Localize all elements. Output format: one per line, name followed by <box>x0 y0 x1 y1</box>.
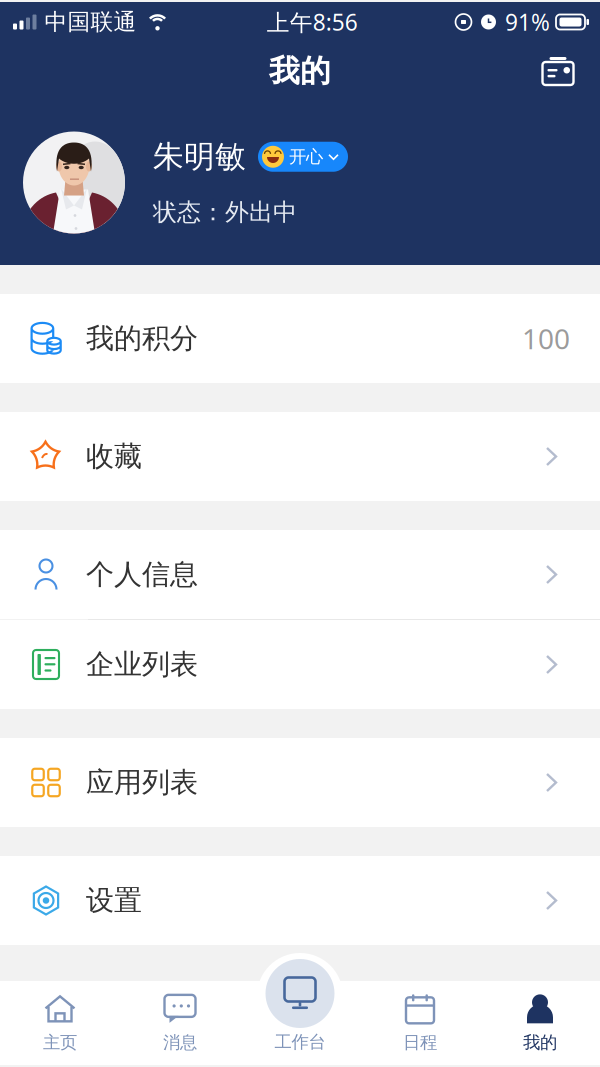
staticText: 朱明敏 <box>153 138 246 176</box>
button[interactable]: 应用列表 <box>0 738 600 827</box>
staticText: 我的 <box>269 52 331 90</box>
button[interactable]: 消息 <box>120 981 240 1065</box>
staticText: 上午8:56 <box>267 7 358 37</box>
staticText: 100 <box>522 320 570 357</box>
button[interactable]: 名片 <box>530 46 600 96</box>
staticText: 消息 <box>163 1032 197 1053</box>
staticText: 设置 <box>86 883 142 918</box>
staticText: 主页 <box>43 1032 77 1053</box>
staticText: 我的 <box>523 1032 557 1053</box>
staticText: 我的积分 <box>86 321 198 356</box>
button[interactable]: 企业列表 <box>0 620 600 709</box>
button[interactable]: 日程 <box>360 981 480 1065</box>
button[interactable]: 主页 <box>0 981 120 1065</box>
button[interactable]: 个人信息 <box>0 530 600 619</box>
button[interactable]: 我的 <box>480 981 600 1065</box>
staticText: 收藏 <box>86 439 142 474</box>
staticText: 开心 <box>289 146 323 167</box>
staticText: 企业列表 <box>86 647 198 682</box>
staticText: 中国联通 <box>44 8 136 36</box>
button[interactable]: 收藏 <box>0 412 600 501</box>
staticText: 日程 <box>403 1032 437 1053</box>
staticText: 91% <box>505 7 550 37</box>
staticText: 个人信息 <box>86 557 198 592</box>
staticText: 工作台 <box>274 1031 325 1053</box>
button[interactable]: 设置 <box>0 856 600 945</box>
button[interactable]: 工作台 <box>265 953 334 1065</box>
staticText: 应用列表 <box>86 765 198 800</box>
button[interactable]: 开心 <box>258 142 348 172</box>
staticText: 状态：外出中 <box>153 198 297 227</box>
button[interactable]: 我的积分 <box>0 294 600 383</box>
